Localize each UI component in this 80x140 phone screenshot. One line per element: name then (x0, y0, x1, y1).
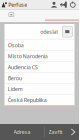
staticText: Perfuse (8, 1, 27, 8)
staticText: Česká Republika (8, 96, 47, 104)
staticText: Adresa (13, 128, 30, 136)
button[interactable]: Berou (4, 73, 74, 83)
button[interactable]: Lidem (4, 84, 74, 94)
button[interactable]: Share (59, 1, 68, 8)
staticText: Osoba (8, 42, 24, 49)
button[interactable]: Česká Republika (4, 95, 74, 105)
staticText: Audiencia CS (8, 64, 38, 71)
button[interactable]: Reload (68, 1, 77, 8)
button[interactable]: Audiencia CS (4, 62, 74, 72)
button[interactable]: Adresa (0, 124, 44, 140)
button[interactable]: Attach image (62, 26, 72, 37)
button[interactable]: Místo Narodenia (4, 51, 74, 61)
staticText: Lidem (8, 85, 23, 93)
staticText: Berou (8, 75, 22, 82)
staticText: Místo Narodenia (8, 53, 48, 60)
button[interactable]: Zavřít (45, 124, 67, 140)
button[interactable]: Perfuse (0, 0, 27, 9)
staticText: Zavřít (49, 128, 63, 136)
button[interactable]: Osoba (4, 40, 74, 50)
staticText: odeslat (40, 28, 58, 35)
button[interactable]: Account (49, 1, 59, 8)
button[interactable]: Forward (71, 128, 76, 136)
button[interactable]: Page info (9, 12, 14, 17)
